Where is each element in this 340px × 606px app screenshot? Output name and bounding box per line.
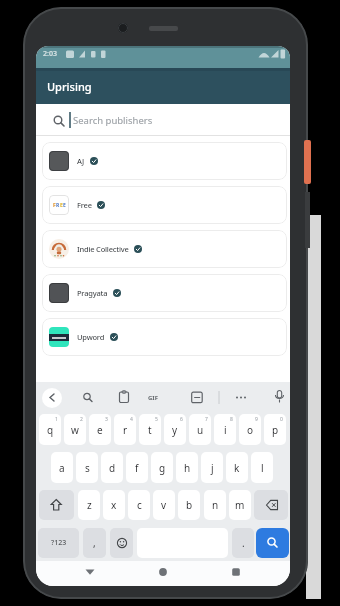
staticText: 5 xyxy=(155,416,158,423)
staticText: x xyxy=(111,498,117,512)
staticText: 2:03 xyxy=(43,49,57,59)
button[interactable]: o xyxy=(239,414,261,445)
staticText: 3 xyxy=(105,416,108,423)
button[interactable]: c xyxy=(128,490,150,520)
staticText: Uprising xyxy=(47,79,92,94)
button[interactable] xyxy=(256,528,289,558)
staticText: o xyxy=(247,423,254,437)
staticText: w xyxy=(71,423,79,437)
button[interactable]: . xyxy=(232,528,254,558)
button[interactable]: AJ xyxy=(42,142,287,180)
staticText: 4 xyxy=(130,416,133,423)
staticText: j xyxy=(211,461,214,475)
button[interactable]: m xyxy=(229,490,251,520)
button[interactable]: Upword xyxy=(42,318,287,356)
button[interactable]: r xyxy=(114,414,136,445)
staticText: a xyxy=(59,461,65,475)
staticText: AJ xyxy=(77,156,85,166)
button[interactable]: v xyxy=(153,490,175,520)
button[interactable] xyxy=(42,388,62,408)
button[interactable]: e xyxy=(89,414,111,445)
button[interactable]: t xyxy=(139,414,161,445)
staticText: Free xyxy=(77,200,92,210)
staticText: 2 xyxy=(80,416,83,423)
button[interactable]: Indie Collective xyxy=(42,230,287,268)
button[interactable]: ?123 xyxy=(38,528,79,558)
button[interactable]: f xyxy=(126,452,148,483)
staticText: ?123 xyxy=(51,538,67,548)
button[interactable]: y xyxy=(164,414,186,445)
staticText: z xyxy=(87,498,92,512)
button[interactable]: a xyxy=(51,452,73,483)
staticText: F xyxy=(53,202,56,209)
staticText: 9 xyxy=(255,416,258,423)
staticText: h xyxy=(184,461,191,475)
staticText: q xyxy=(47,423,54,437)
button[interactable]: , xyxy=(83,528,106,558)
staticText: v xyxy=(161,498,167,512)
staticText: m xyxy=(235,498,245,512)
staticText: R xyxy=(56,202,60,209)
staticText: E xyxy=(63,202,66,209)
button[interactable] xyxy=(39,490,74,520)
staticText: l xyxy=(261,461,264,475)
staticText: p xyxy=(272,423,279,437)
button[interactable]: p xyxy=(264,414,286,445)
button[interactable]: b xyxy=(178,490,200,520)
button[interactable]: w xyxy=(64,414,86,445)
staticText: f xyxy=(135,461,139,475)
button[interactable] xyxy=(110,528,133,558)
staticText: , xyxy=(93,536,96,550)
button[interactable]: Pragyata xyxy=(42,274,287,312)
staticText: Upword xyxy=(77,332,105,342)
staticText: k xyxy=(234,461,240,475)
staticText: e xyxy=(97,423,103,437)
staticText: y xyxy=(172,423,178,437)
button[interactable]: z xyxy=(78,490,100,520)
staticText: Indie Collective xyxy=(77,244,129,254)
button[interactable]: g xyxy=(151,452,173,483)
button[interactable]: k xyxy=(226,452,248,483)
staticText: s xyxy=(85,461,90,475)
staticText: u xyxy=(197,423,204,437)
staticText: n xyxy=(212,498,219,512)
staticText: r xyxy=(123,423,128,437)
staticText: 7 xyxy=(205,416,208,423)
staticText: 6 xyxy=(180,416,183,423)
button[interactable] xyxy=(254,490,288,520)
staticText: b xyxy=(186,498,193,512)
staticText: 8 xyxy=(230,416,233,423)
button[interactable]: s xyxy=(76,452,98,483)
staticText: . xyxy=(242,536,245,550)
button[interactable]: d xyxy=(101,452,123,483)
staticText: 0 xyxy=(280,416,283,423)
button[interactable]: j xyxy=(201,452,223,483)
button[interactable] xyxy=(78,561,102,585)
staticText: i xyxy=(224,423,227,437)
button[interactable]: i xyxy=(214,414,236,445)
staticText: Pragyata xyxy=(77,288,108,298)
button[interactable] xyxy=(151,561,175,585)
button[interactable]: x xyxy=(103,490,125,520)
button[interactable]: q xyxy=(39,414,61,445)
button[interactable]: Search publishers xyxy=(36,104,290,136)
button[interactable]: l xyxy=(251,452,273,483)
button[interactable]: F xyxy=(42,186,287,224)
button[interactable]: n xyxy=(204,490,226,520)
staticText: g xyxy=(159,461,166,475)
staticText: c xyxy=(137,498,142,512)
staticText: 1 xyxy=(55,416,58,423)
staticText: t xyxy=(148,423,152,437)
staticText: E xyxy=(60,202,63,209)
button[interactable] xyxy=(224,561,248,585)
button[interactable]: u xyxy=(189,414,211,445)
staticText: d xyxy=(109,461,116,475)
staticText: GIF xyxy=(148,394,158,402)
staticText: Search publishers xyxy=(73,114,153,127)
button[interactable]: h xyxy=(176,452,198,483)
